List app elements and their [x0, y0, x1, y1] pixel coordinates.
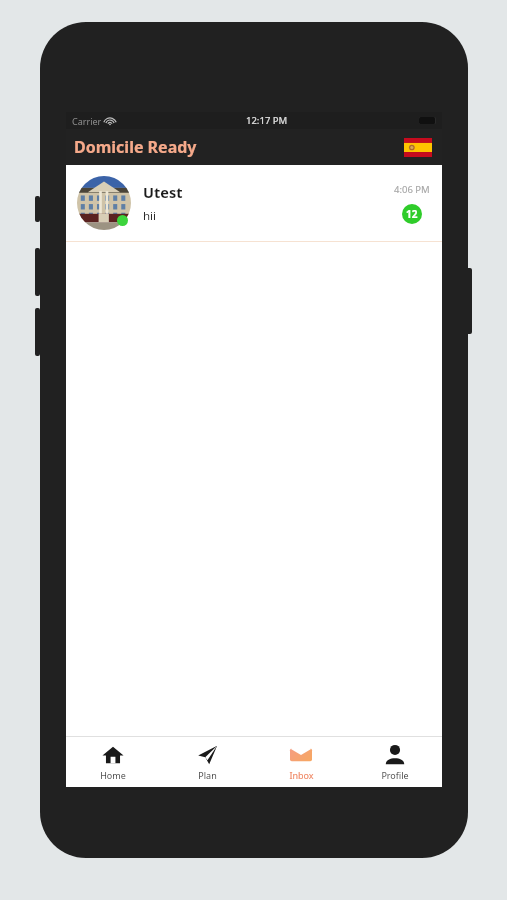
staticText: hii	[143, 208, 157, 224]
button[interactable]: Inbox	[254, 737, 348, 787]
staticText: 12	[406, 207, 418, 221]
staticText: Utest	[143, 182, 183, 202]
staticText: Carrier	[72, 115, 102, 127]
staticText: 4:06 PM	[394, 183, 430, 196]
staticText: Inbox	[289, 769, 314, 781]
staticText: Profile	[381, 769, 409, 781]
button[interactable]: Profile	[348, 737, 442, 787]
button[interactable]: Plan	[160, 737, 254, 787]
staticText: Home	[100, 769, 126, 781]
staticText: Plan	[198, 769, 217, 781]
button[interactable]: Language: Spanish	[404, 138, 432, 157]
staticText: 12:17 PM	[246, 114, 288, 127]
staticText: Domicile Ready	[74, 136, 197, 158]
button[interactable]: Home	[66, 737, 160, 787]
button[interactable]: Utest	[66, 165, 442, 242]
